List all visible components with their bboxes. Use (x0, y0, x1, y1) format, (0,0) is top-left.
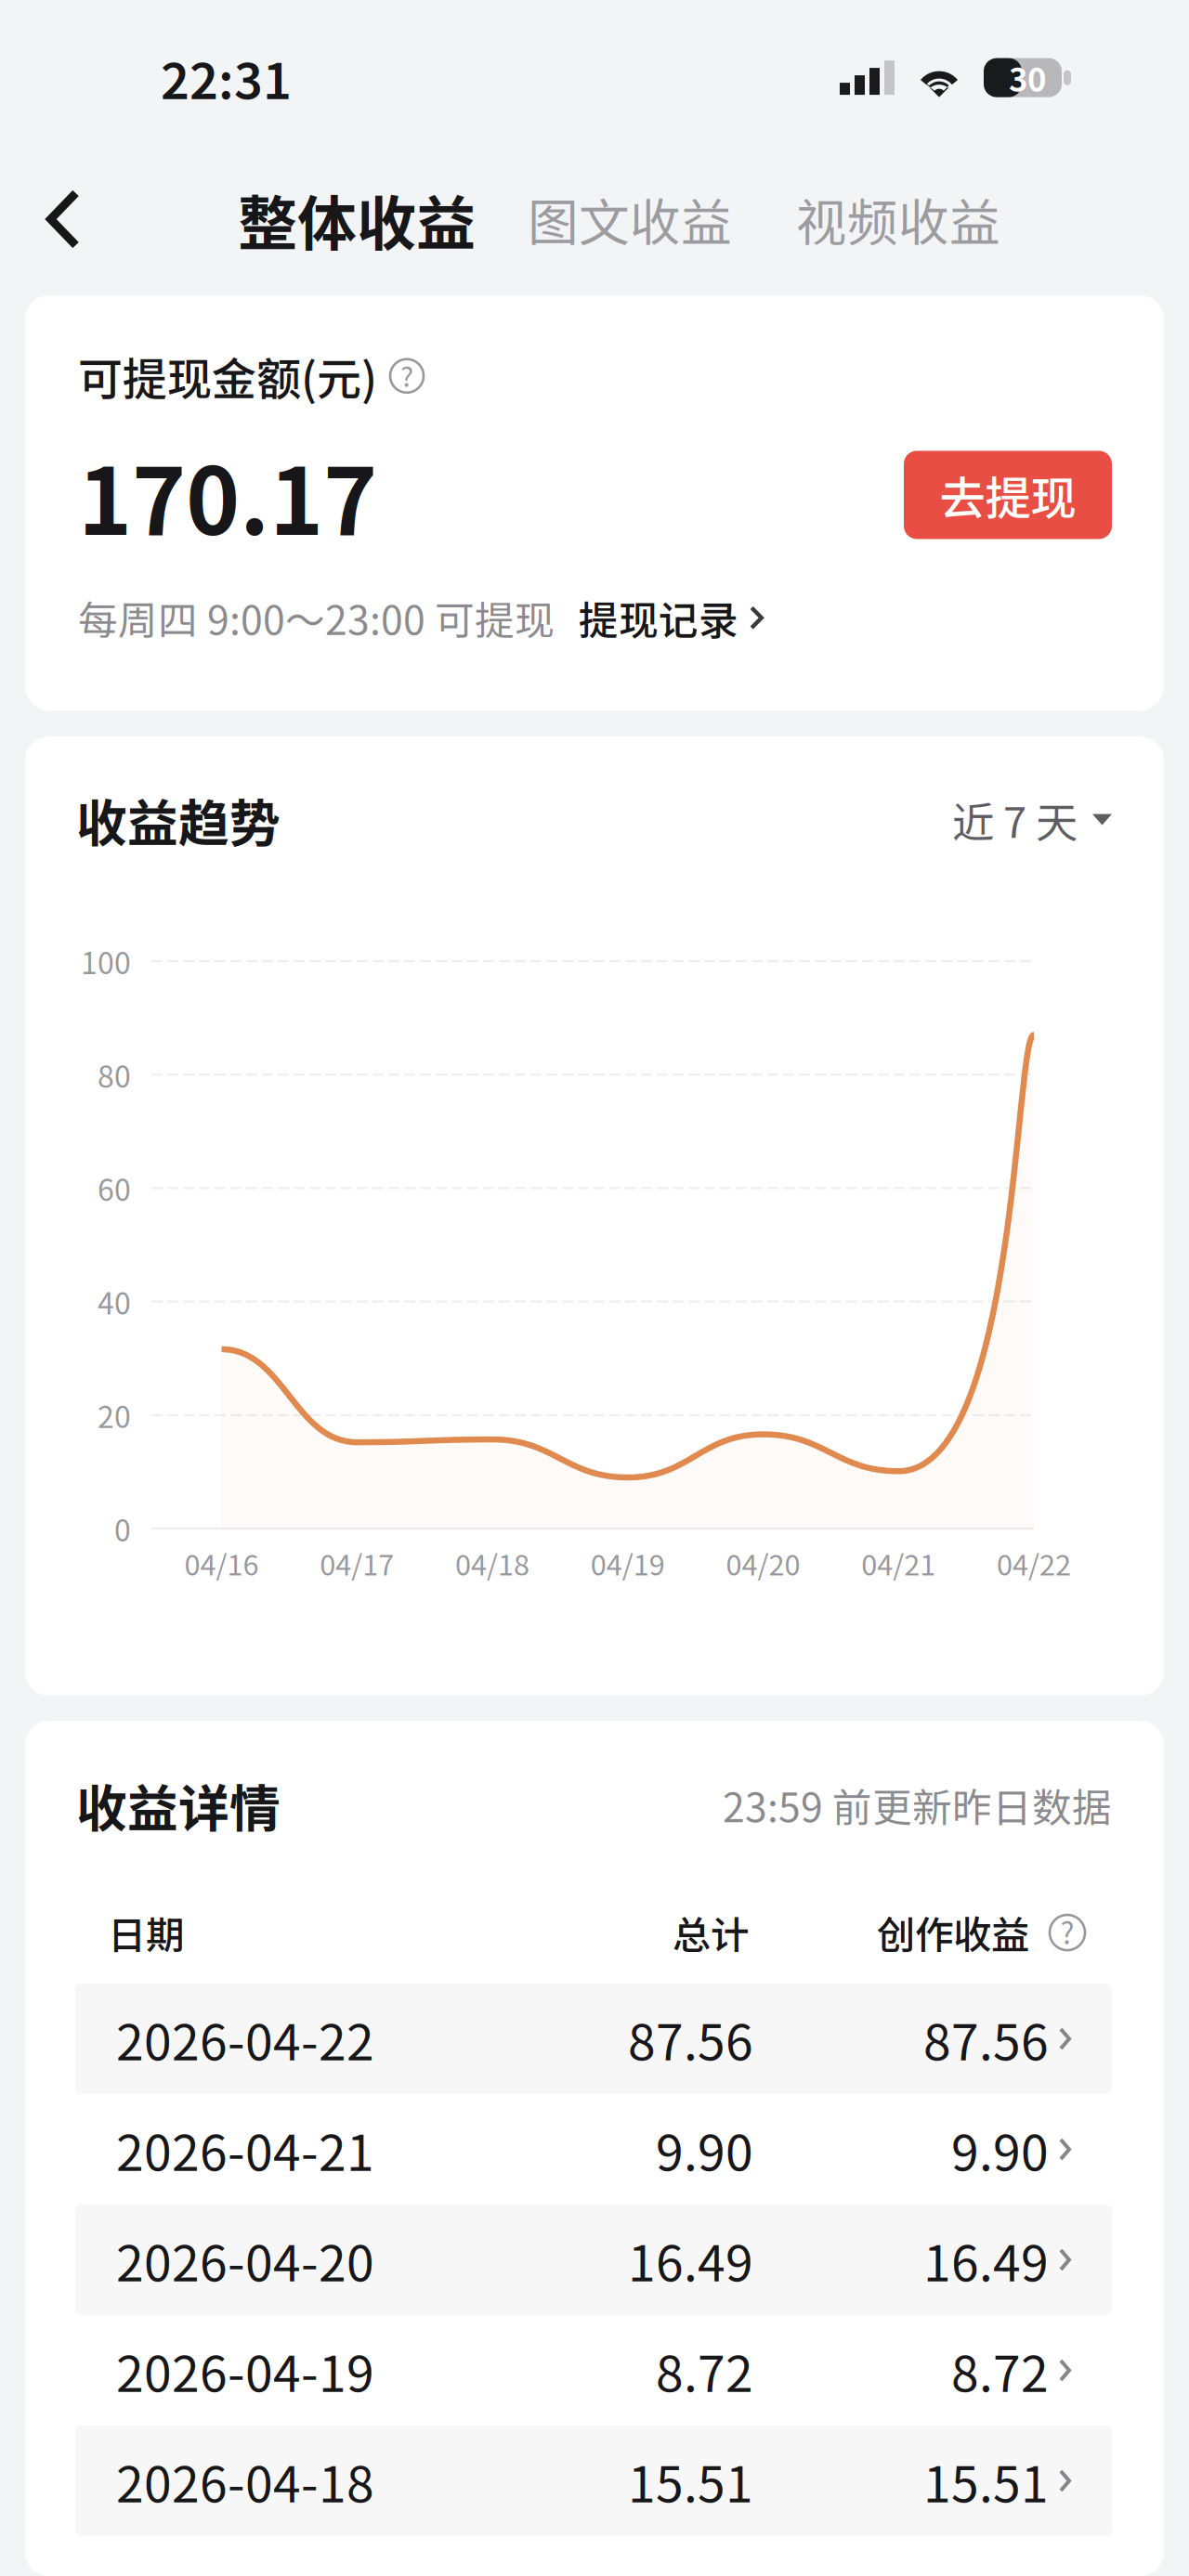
staticText: 04/22 (997, 1542, 1071, 1584)
button[interactable]: 提现记录 (579, 589, 764, 647)
button[interactable]: 2026-04-19 (75, 2315, 1112, 2426)
button[interactable]: 返回 (0, 173, 126, 266)
staticText: 15.51 (923, 2445, 1049, 2517)
staticText: 04/19 (591, 1542, 665, 1584)
staticText: 30 (1009, 54, 1046, 101)
staticText: 20 (98, 1393, 131, 1436)
staticText: 87.56 (628, 2003, 753, 2075)
button[interactable]: 2026-04-18 (75, 2426, 1112, 2536)
staticText: 8.72 (951, 2334, 1049, 2406)
staticText: 创作收益 (877, 1905, 1029, 1960)
staticText: 60 (98, 1167, 131, 1210)
staticText: 04/17 (320, 1542, 394, 1584)
staticText: 2026-04-20 (116, 2224, 374, 2296)
staticText: 100 (81, 940, 131, 983)
staticText: 2026-04-19 (116, 2334, 374, 2406)
button[interactable]: 近 7 天 (952, 789, 1112, 850)
staticText: 收益详情 (76, 1768, 281, 1842)
staticText: 15.51 (628, 2445, 753, 2517)
button[interactable]: 视频收益 (796, 173, 1000, 266)
staticText: 04/21 (861, 1542, 936, 1584)
staticText: 去提现 (940, 462, 1076, 528)
staticText: 9.90 (656, 2113, 753, 2185)
staticText: 170.17 (78, 429, 377, 561)
staticText: ? (1060, 1910, 1074, 1953)
staticText: 近 7 天 (952, 789, 1078, 850)
staticText: 87.56 (923, 2003, 1049, 2075)
staticText: 视频收益 (796, 182, 1000, 256)
button[interactable]: 2026-04-22 (75, 1984, 1112, 2094)
button[interactable]: 2026-04-20 (75, 2205, 1112, 2315)
staticText: 每周四 9:00～23:00 可提现 (78, 589, 555, 647)
button[interactable]: 图文收益 (528, 173, 732, 266)
staticText: 总计 (673, 1905, 749, 1960)
button[interactable]: 去提现 (904, 451, 1112, 539)
staticText: 2026-04-21 (116, 2113, 374, 2185)
staticText: 23:59 前更新昨日数据 (723, 1776, 1112, 1834)
staticText: 80 (98, 1053, 131, 1096)
staticText: 整体收益 (238, 176, 476, 262)
staticText: 收益趋势 (76, 783, 281, 856)
staticText: 图文收益 (528, 182, 732, 256)
staticText: 2026-04-18 (116, 2445, 374, 2517)
staticText: 8.72 (656, 2334, 753, 2406)
button[interactable]: 整体收益 (238, 173, 476, 266)
staticText: 9.90 (951, 2113, 1049, 2185)
staticText: 2026-04-22 (116, 2003, 374, 2075)
staticText: 日期 (108, 1905, 184, 1960)
staticText: ? (400, 355, 413, 395)
staticText: 0 (114, 1507, 131, 1550)
staticText: 40 (98, 1280, 131, 1323)
staticText: 16.49 (923, 2224, 1049, 2296)
staticText: 可提现金额(元) (78, 344, 377, 408)
button[interactable]: 2026-04-21 (75, 2094, 1112, 2205)
staticText: 04/18 (455, 1542, 529, 1584)
staticText: 04/20 (726, 1542, 800, 1584)
staticText: 提现记录 (579, 589, 738, 647)
staticText: 22:31 (161, 42, 292, 113)
staticText: 04/16 (184, 1542, 259, 1584)
staticText: 16.49 (628, 2224, 753, 2296)
